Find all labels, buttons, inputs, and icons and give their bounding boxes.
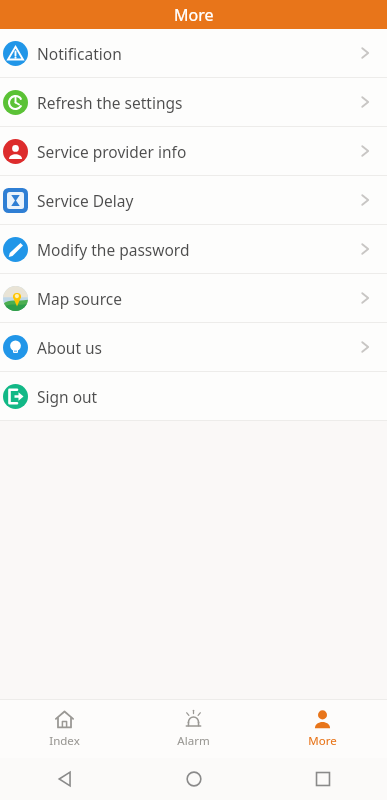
button[interactable]: Refresh the settings <box>0 78 387 126</box>
button[interactable]: Sign out <box>0 372 387 420</box>
staticText: More <box>174 4 214 26</box>
other: Notification <box>3 41 28 66</box>
other: About us <box>3 335 28 360</box>
staticText: Index <box>49 733 80 749</box>
button[interactable]: Map source <box>0 274 387 322</box>
button[interactable]: Index <box>0 700 129 758</box>
other: Service provider info <box>3 139 28 164</box>
button[interactable]: Notification <box>0 29 387 77</box>
staticText: Service Delay <box>37 190 134 211</box>
button[interactable]: Modify the password <box>0 225 387 273</box>
staticText: Sign out <box>37 386 98 407</box>
other: Index <box>54 709 75 730</box>
staticText: Modify the password <box>37 239 190 260</box>
button[interactable]: Service provider info <box>0 127 387 175</box>
button[interactable]: Service Delay <box>0 176 387 224</box>
staticText: Refresh the settings <box>37 92 183 113</box>
staticText: Notification <box>37 43 122 64</box>
other: Map source <box>3 286 28 311</box>
other: Sign out <box>3 384 28 409</box>
other: Service Delay <box>3 188 28 213</box>
staticText: More <box>308 733 337 749</box>
other: More <box>312 709 333 730</box>
button[interactable]: More <box>258 700 387 758</box>
button[interactable]: Alarm <box>129 700 258 758</box>
other: Refresh the settings <box>3 90 28 115</box>
staticText: Alarm <box>177 733 210 749</box>
staticText: Map source <box>37 288 122 309</box>
other: Modify the password <box>3 237 28 262</box>
staticText: About us <box>37 337 103 358</box>
other: Alarm <box>183 709 204 730</box>
staticText: Service provider info <box>37 141 187 162</box>
button[interactable]: About us <box>0 323 387 371</box>
